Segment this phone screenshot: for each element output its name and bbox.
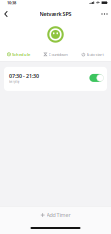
button[interactable]: Schedule	[0, 50, 37, 59]
staticText: Add Timer	[46, 211, 70, 219]
staticText: Auto start	[86, 52, 103, 57]
staticText: Everyday	[9, 80, 19, 83]
button[interactable]: Back	[0, 8, 15, 20]
button[interactable]: More options	[94, 8, 111, 20]
button[interactable]: Add Timer	[0, 207, 111, 223]
button[interactable]: Auto start	[74, 50, 111, 59]
staticText: 10:38	[7, 0, 16, 5]
button[interactable]: 07:30 - 21:30	[4, 67, 107, 91]
staticText: 07:30 - 21:30	[9, 72, 39, 79]
staticText: Countdown	[48, 52, 67, 57]
staticText: Schedule	[12, 52, 30, 57]
staticText: Netværk SPS	[39, 10, 71, 18]
button[interactable]: Countdown	[37, 50, 74, 59]
